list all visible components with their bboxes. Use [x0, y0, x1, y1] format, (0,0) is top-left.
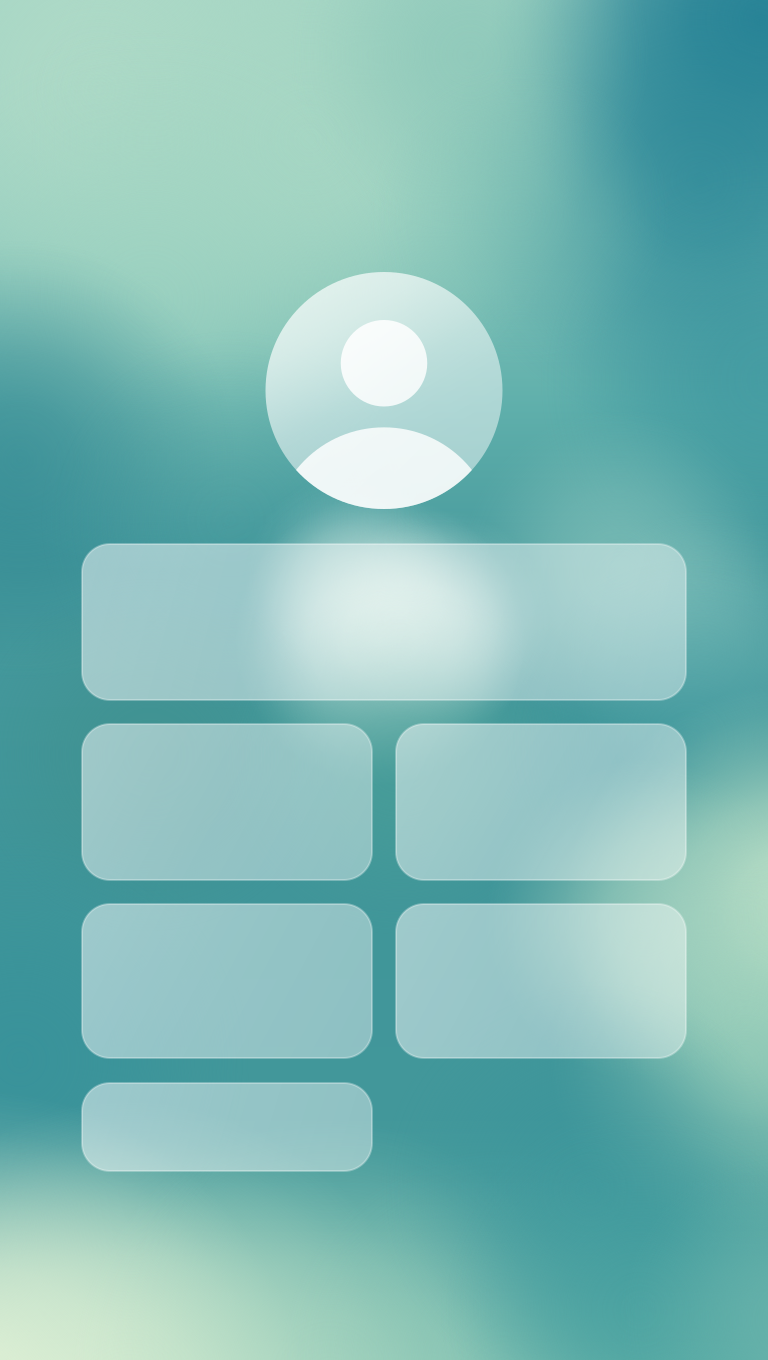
button[interactable] [82, 544, 686, 700]
button[interactable] [396, 904, 686, 1058]
button[interactable] [82, 724, 372, 880]
button[interactable] [82, 904, 372, 1058]
button[interactable] [396, 724, 686, 880]
button[interactable] [82, 1083, 372, 1171]
